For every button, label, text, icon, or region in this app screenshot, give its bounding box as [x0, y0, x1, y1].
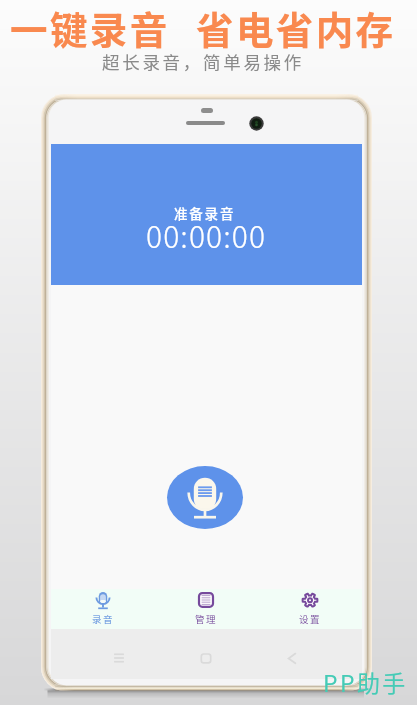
staticText: 设置	[299, 612, 321, 626]
staticText: 准备录音	[174, 203, 236, 223]
staticText: PP助手	[323, 665, 408, 698]
button[interactable]: 管理	[154, 589, 258, 629]
staticText: 00:00:00	[146, 213, 267, 256]
staticText: 管理	[195, 612, 217, 626]
button[interactable]: Start recording	[167, 466, 243, 529]
staticText: 超长录音，简单易操作	[102, 49, 304, 74]
staticText: 录音	[92, 612, 114, 626]
staticText: 省电省内存	[196, 0, 396, 54]
staticText: 一键录音	[10, 0, 170, 54]
button[interactable]: 设置	[258, 589, 362, 629]
button[interactable]: 录音	[51, 589, 154, 629]
